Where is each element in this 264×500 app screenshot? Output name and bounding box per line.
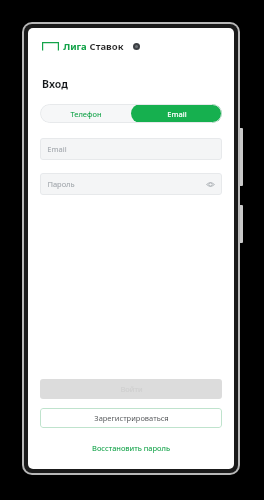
staticText: Email (47, 144, 67, 154)
staticText: Email (167, 109, 187, 119)
staticText: Войти (120, 384, 143, 394)
button[interactable]: Показать пароль (205, 179, 215, 189)
staticText: Телефон (70, 109, 102, 119)
staticText: Вход (42, 77, 68, 91)
button[interactable]: Телефон (40, 104, 131, 123)
button[interactable]: Email (40, 138, 222, 160)
button[interactable]: Пароль (40, 173, 222, 195)
button[interactable]: Зарегистрироваться (40, 408, 222, 428)
button[interactable]: Email (131, 104, 222, 123)
staticText: Зарегистрироваться (94, 413, 169, 423)
staticText: Пароль (47, 179, 75, 189)
staticText: Ставок (89, 40, 124, 53)
staticText: Восстановить пароль (92, 443, 170, 453)
staticText: Лига (63, 40, 87, 53)
button[interactable]: Восстановить пароль (28, 441, 234, 455)
